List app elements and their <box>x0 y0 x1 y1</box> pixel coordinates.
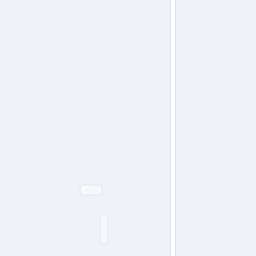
button[interactable]: Level <box>100 214 108 244</box>
button[interactable]: ABC <box>80 185 102 195</box>
